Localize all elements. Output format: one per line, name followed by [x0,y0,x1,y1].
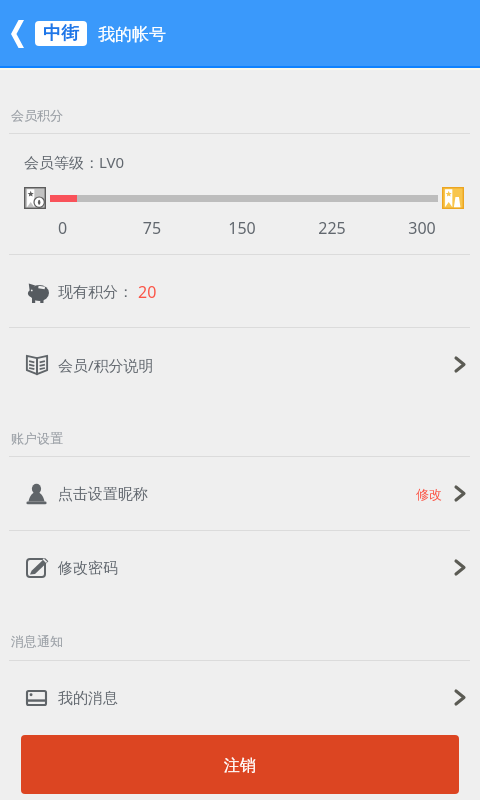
staticText: 150 [197,217,287,239]
staticText: 账户设置 [11,430,63,446]
staticText: 75 [107,217,197,239]
button[interactable]: Back [0,0,34,68]
staticText: 消息通知 [11,633,63,649]
staticText: 225 [287,217,377,239]
staticText: 会员积分 [11,107,63,123]
staticText: 注销 [224,756,256,776]
staticText: 现有积分： [58,283,133,302]
button[interactable]: 注销 [21,735,459,794]
staticText: 20 [138,281,157,303]
staticText: 我的帐号 [98,24,166,45]
staticText: 修改 [416,486,442,502]
button[interactable]: 我的消息 [0,660,480,736]
button[interactable]: 会员/积分说明 [0,327,480,403]
staticText: 修改密码 [58,559,118,578]
staticText: 会员/积分说明 [58,355,154,375]
button[interactable]: 修改密码 [0,530,480,606]
staticText: 会员等级：LV0 [24,152,125,172]
staticText: 中街 [43,22,79,45]
staticText: 我的消息 [58,689,118,708]
staticText: 0 [18,217,107,239]
staticText: 点击设置昵称 [58,485,148,504]
button[interactable]: 点击设置昵称 [0,456,480,532]
staticText: 300 [377,217,467,239]
